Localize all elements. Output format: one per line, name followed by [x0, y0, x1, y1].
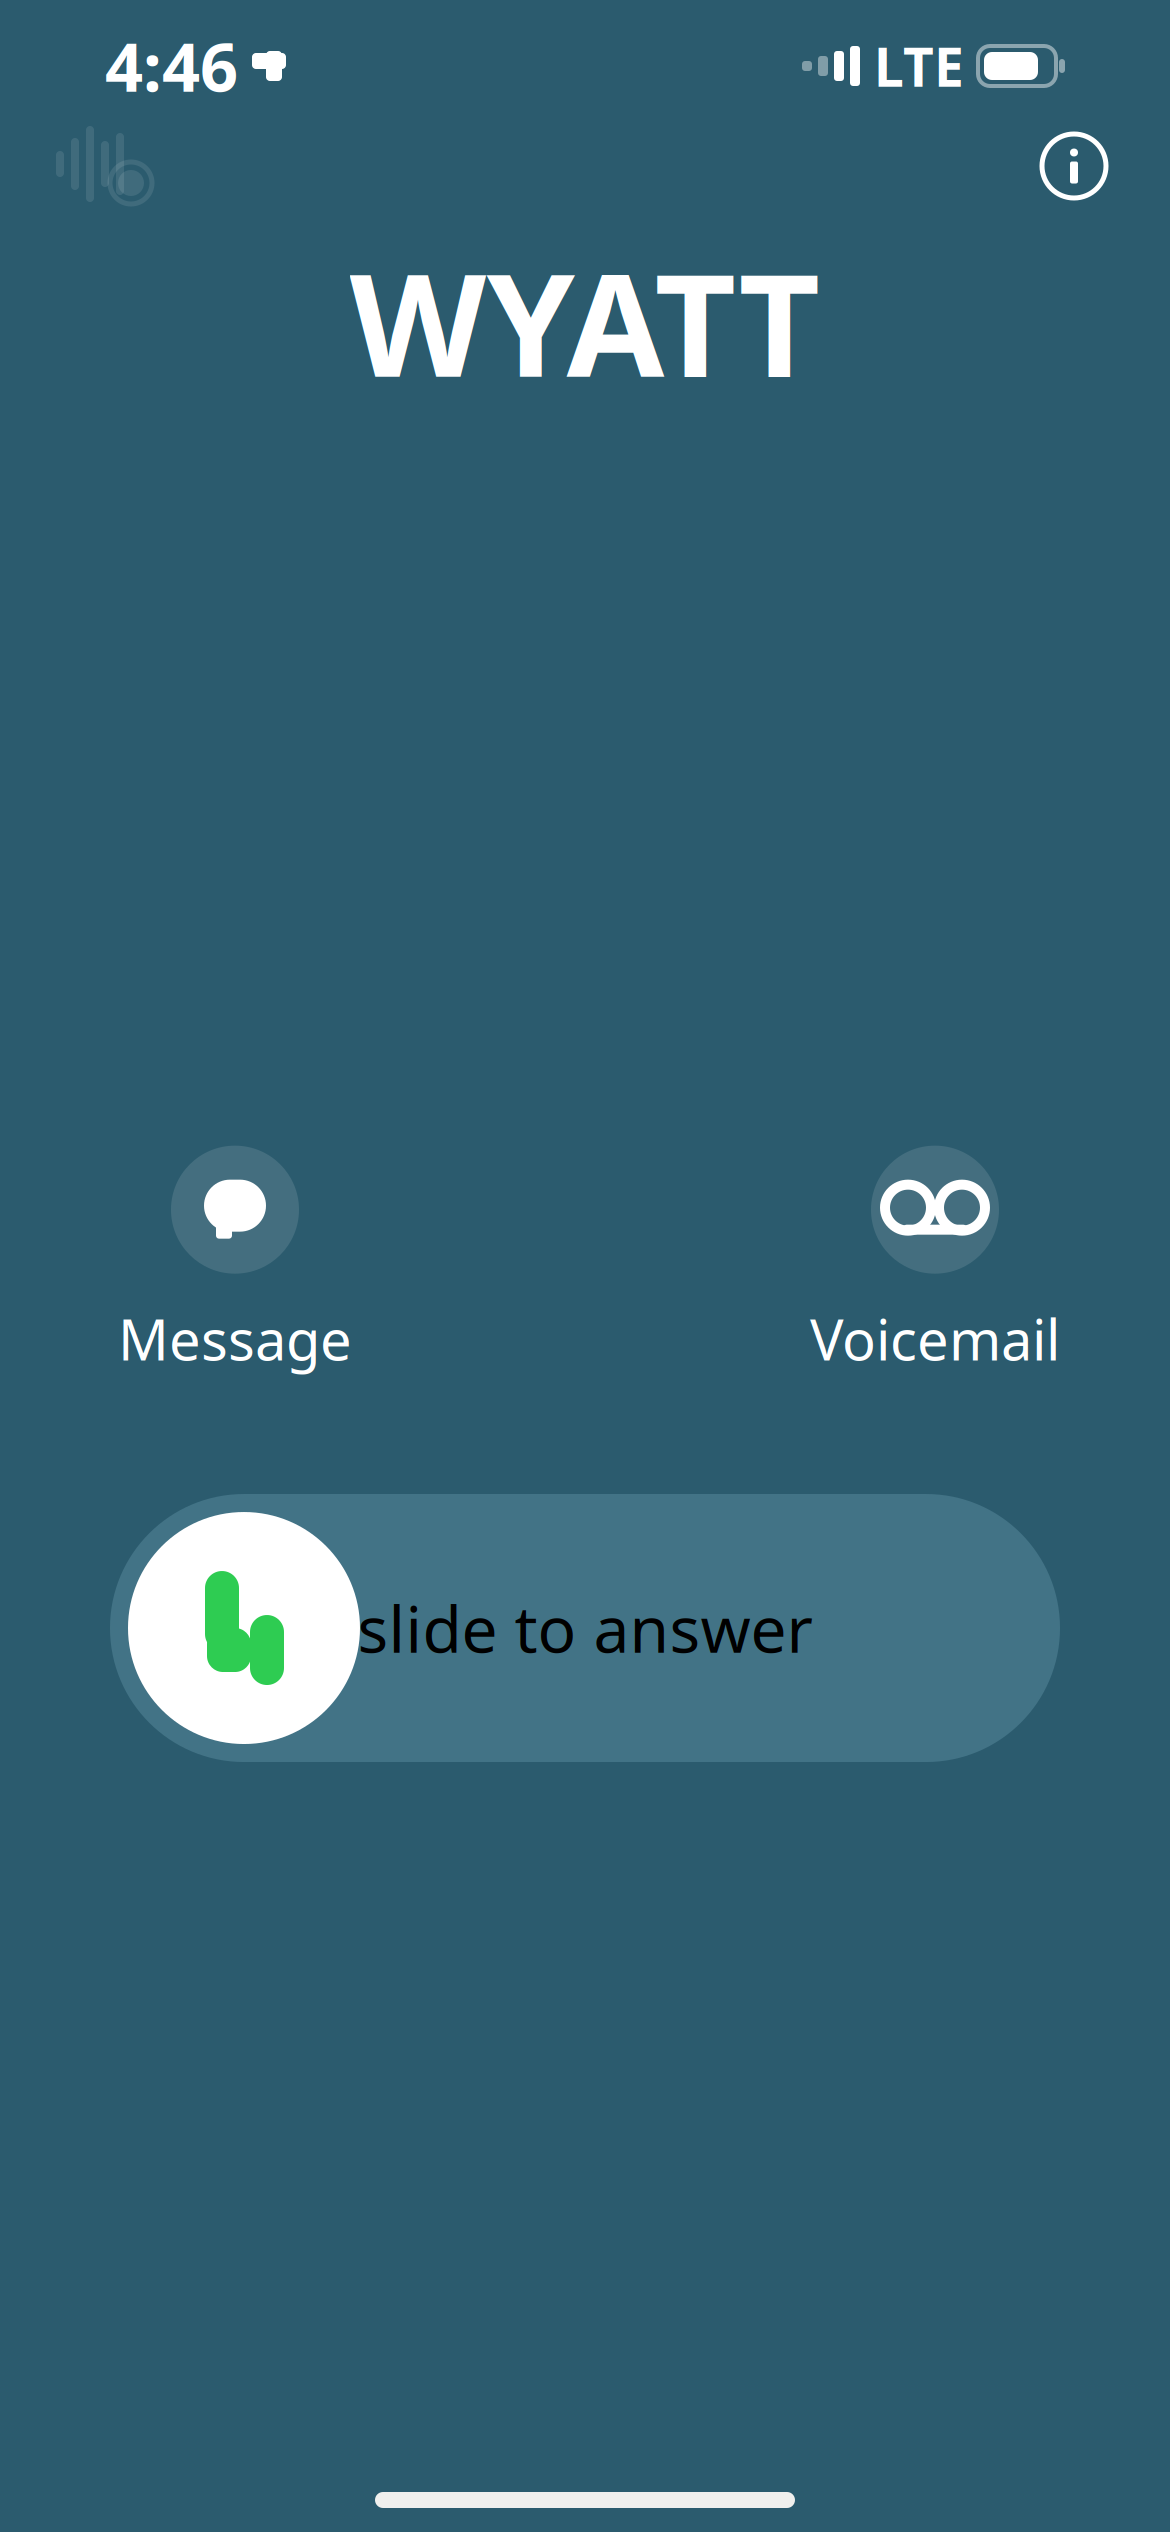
- button[interactable]: Call info: [1026, 118, 1122, 214]
- staticText: Message: [118, 1302, 352, 1376]
- staticText: WYATT: [349, 228, 820, 416]
- button[interactable]: slide to answer: [110, 1494, 1060, 1762]
- staticText: LTE: [874, 31, 964, 101]
- staticText: 4:46: [105, 22, 238, 110]
- staticText: Voicemail: [810, 1302, 1060, 1376]
- button[interactable]: Voicemail: [805, 1146, 1065, 1376]
- button[interactable]: Message: [105, 1146, 365, 1376]
- staticText: slide to answer: [357, 1585, 812, 1670]
